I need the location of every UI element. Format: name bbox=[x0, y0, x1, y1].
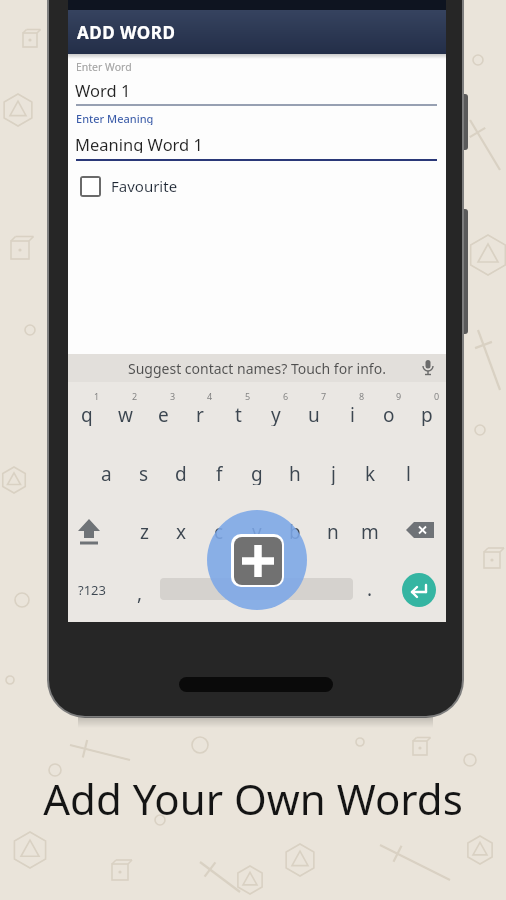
staticText: Word 1 bbox=[75, 79, 131, 99]
staticText: Suggest contact names? Touch for info. bbox=[128, 359, 386, 378]
staticText: u bbox=[308, 402, 320, 426]
staticText: i bbox=[350, 402, 355, 426]
button[interactable] bbox=[69, 516, 111, 550]
staticText: v bbox=[252, 519, 262, 543]
button[interactable]: e bbox=[149, 402, 177, 426]
button[interactable]: , bbox=[130, 580, 150, 604]
button[interactable]: i bbox=[338, 402, 366, 426]
button[interactable]: Suggest contact names? Touch for info. bbox=[68, 354, 446, 382]
staticText: a bbox=[101, 461, 112, 485]
staticText: f bbox=[216, 461, 223, 485]
staticText: g bbox=[251, 461, 263, 485]
staticText: b bbox=[289, 519, 301, 543]
staticText: h bbox=[289, 461, 301, 485]
staticText: ADD WORD bbox=[77, 21, 176, 44]
button[interactable]: p bbox=[413, 402, 441, 426]
staticText: q bbox=[81, 402, 93, 426]
button[interactable]: j bbox=[319, 461, 347, 485]
staticText: j bbox=[331, 461, 336, 485]
button[interactable]: h bbox=[281, 461, 309, 485]
staticText: d bbox=[175, 461, 187, 485]
button[interactable]: y bbox=[262, 402, 290, 426]
button[interactable]: d bbox=[167, 461, 195, 485]
staticText: e bbox=[158, 402, 169, 426]
button[interactable]: r bbox=[186, 402, 214, 426]
button[interactable] bbox=[404, 514, 440, 546]
staticText: . bbox=[367, 576, 373, 600]
button[interactable] bbox=[402, 573, 436, 607]
button[interactable]: ADD WORD bbox=[68, 10, 446, 54]
staticText: 6 bbox=[283, 390, 289, 402]
staticText: k bbox=[365, 461, 376, 485]
staticText: 8 bbox=[359, 390, 365, 402]
staticText: 4 bbox=[207, 390, 213, 402]
button[interactable]: q bbox=[73, 402, 101, 426]
staticText: 0 bbox=[434, 390, 440, 402]
button[interactable]: o bbox=[375, 402, 403, 426]
staticText: m bbox=[361, 519, 379, 543]
button[interactable]: v bbox=[243, 519, 271, 543]
button[interactable]: x bbox=[167, 519, 195, 543]
button[interactable]: g bbox=[243, 461, 271, 485]
button[interactable]: Meaning Word 1 bbox=[75, 133, 255, 153]
button[interactable]: b bbox=[281, 519, 309, 543]
staticText: 7 bbox=[321, 390, 327, 402]
button[interactable]: u bbox=[300, 402, 328, 426]
staticText: w bbox=[118, 402, 133, 426]
staticText: Meaning Word 1 bbox=[75, 133, 203, 153]
staticText: p bbox=[421, 402, 433, 426]
staticText: y bbox=[271, 402, 281, 426]
staticText: l bbox=[406, 461, 411, 485]
button[interactable]: w bbox=[111, 402, 139, 426]
button[interactable] bbox=[160, 578, 353, 600]
staticText: z bbox=[140, 519, 149, 543]
staticText: Enter Meaning bbox=[76, 111, 154, 125]
button[interactable]: m bbox=[356, 519, 384, 543]
button[interactable]: Favourite bbox=[78, 171, 228, 201]
button[interactable] bbox=[207, 510, 307, 610]
staticText: Favourite bbox=[111, 176, 178, 196]
staticText: n bbox=[327, 519, 339, 543]
staticText: o bbox=[383, 402, 395, 426]
staticText: 2 bbox=[132, 390, 138, 402]
button[interactable]: s bbox=[130, 461, 158, 485]
staticText: 5 bbox=[245, 390, 251, 402]
staticText: 9 bbox=[396, 390, 402, 402]
staticText: , bbox=[137, 580, 143, 604]
button[interactable]: n bbox=[319, 519, 347, 543]
button[interactable]: c bbox=[205, 519, 233, 543]
staticText: 3 bbox=[170, 390, 176, 402]
staticText: x bbox=[176, 519, 187, 543]
button[interactable]: z bbox=[130, 519, 158, 543]
button[interactable]: t bbox=[224, 402, 252, 426]
staticText: 1 bbox=[94, 390, 100, 402]
button[interactable]: Word 1 bbox=[75, 79, 195, 99]
button[interactable]: . bbox=[360, 576, 380, 600]
button[interactable]: a bbox=[92, 461, 120, 485]
staticText: c bbox=[214, 519, 224, 543]
button[interactable]: l bbox=[394, 461, 422, 485]
staticText: Enter Word bbox=[76, 60, 132, 74]
staticText: r bbox=[196, 402, 204, 426]
staticText: ?123 bbox=[78, 581, 106, 599]
button[interactable]: f bbox=[205, 461, 233, 485]
staticText: Add Your Own Words bbox=[43, 770, 463, 827]
staticText: t bbox=[235, 402, 242, 426]
button[interactable]: k bbox=[356, 461, 384, 485]
staticText: s bbox=[139, 461, 149, 485]
button[interactable]: ?123 bbox=[74, 580, 110, 600]
